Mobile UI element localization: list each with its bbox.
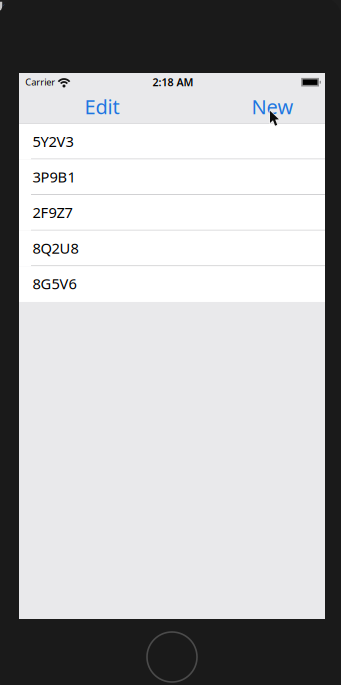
button[interactable]: 2F9Z7 (19, 195, 325, 231)
button[interactable]: 5Y2V3 (19, 124, 325, 159)
button[interactable]: New (242, 87, 302, 126)
staticText: Edit (84, 93, 119, 120)
button[interactable]: 3P9B1 (19, 159, 325, 195)
staticText: 2F9Z7 (32, 203, 72, 222)
staticText: 3P9B1 (32, 167, 75, 187)
staticText: 8Q2U8 (32, 238, 78, 258)
staticText: 8G5V6 (32, 274, 76, 293)
staticText: 5Y2V3 (32, 131, 73, 151)
button[interactable]: 8Q2U8 (19, 231, 325, 266)
staticText: New (251, 93, 293, 120)
staticText: ox (2, 0, 15, 14)
staticText: Carrier (25, 76, 55, 88)
button[interactable]: Edit (75, 87, 128, 126)
button[interactable]: 8G5V6 (19, 266, 325, 302)
staticText: 2:18 AM (152, 75, 193, 89)
